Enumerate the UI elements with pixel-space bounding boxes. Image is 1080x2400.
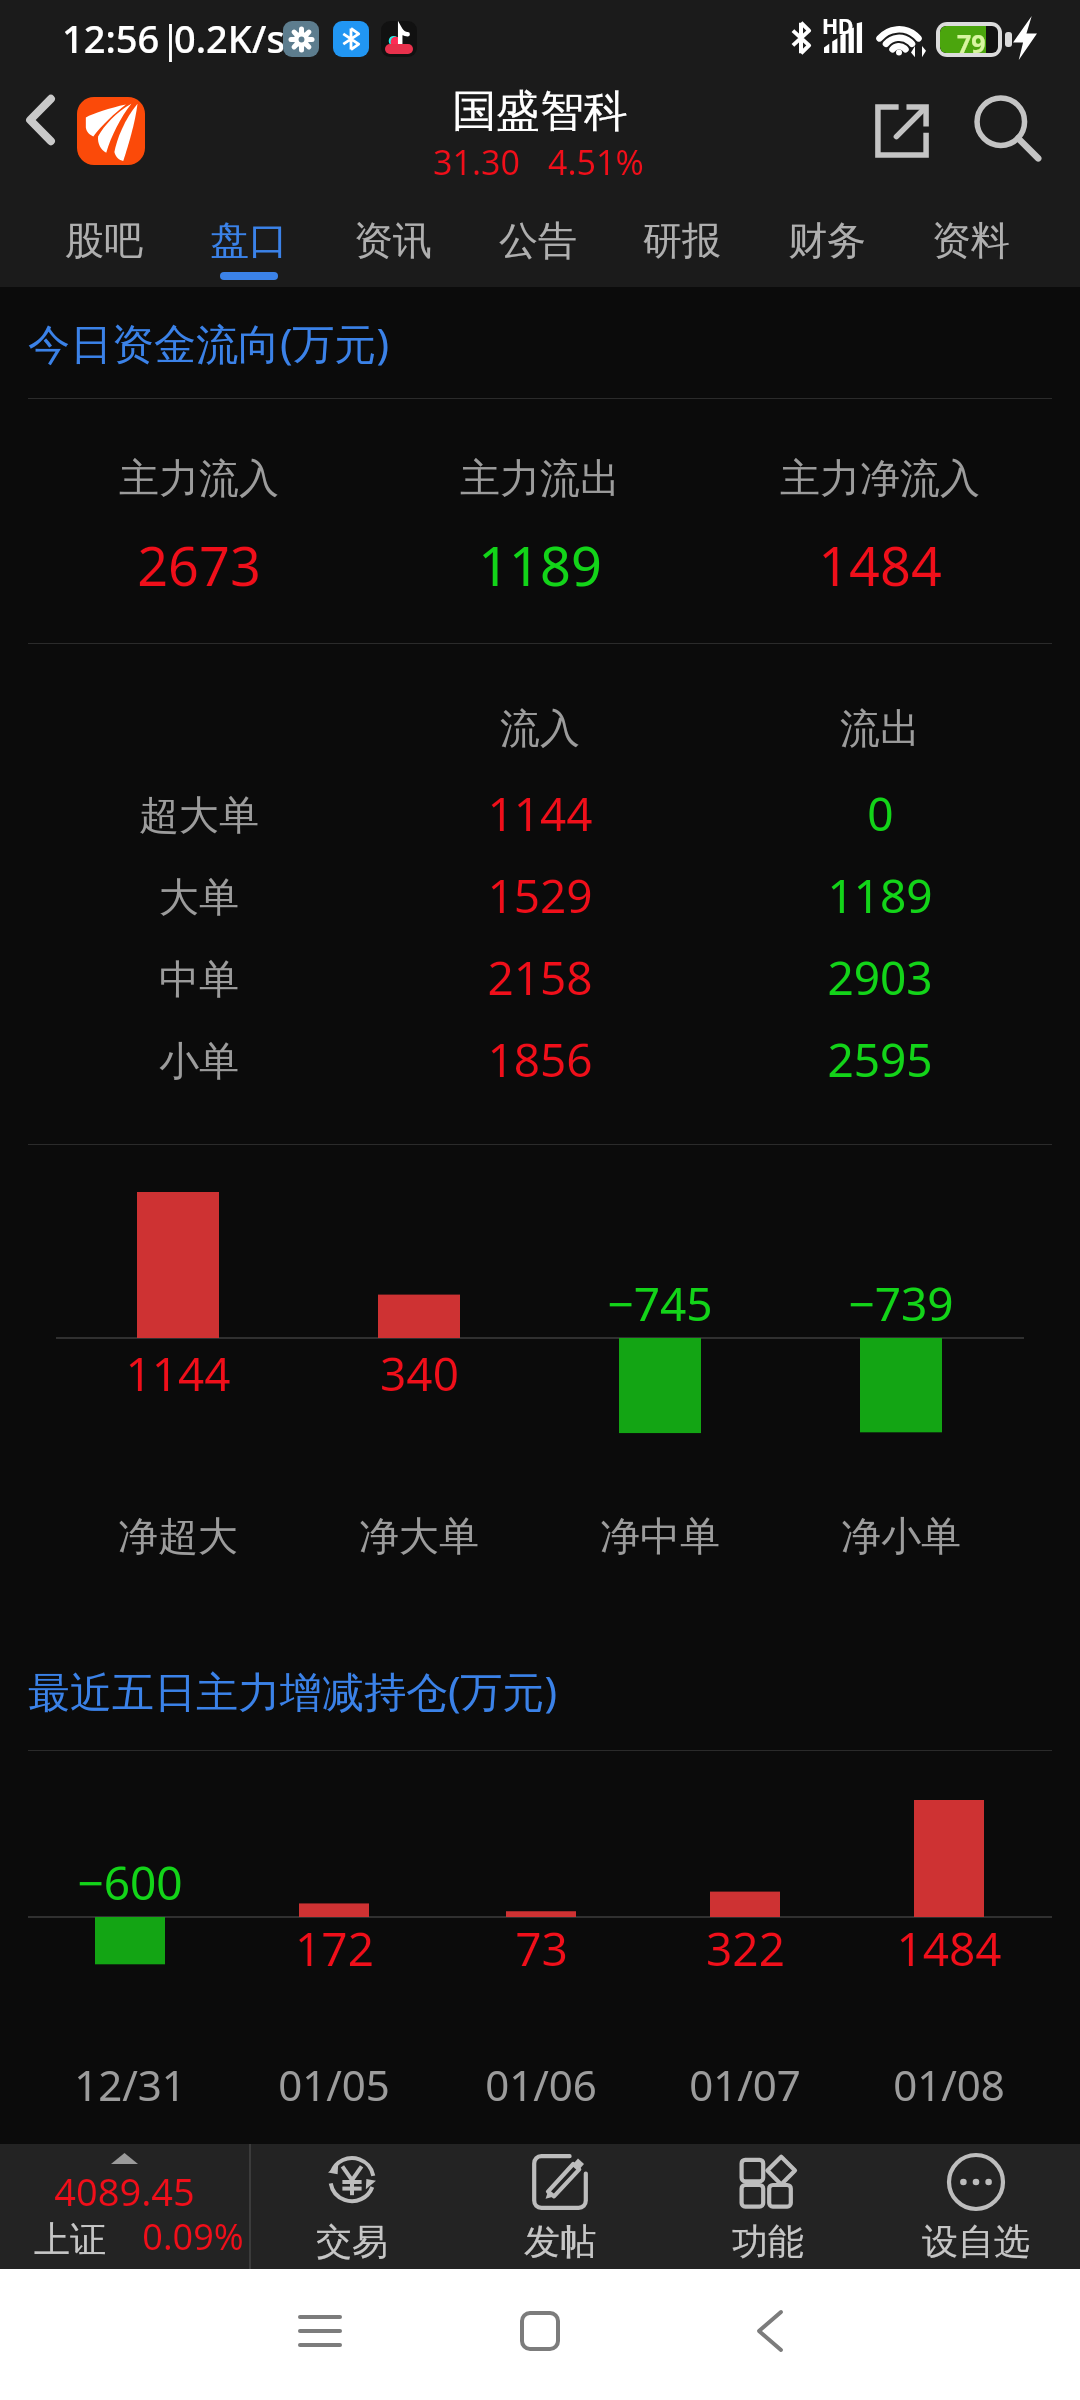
button[interactable] bbox=[755, 192, 899, 287]
staticText: 2595 bbox=[827, 1028, 933, 1091]
staticText: −600 bbox=[77, 1851, 183, 1914]
button[interactable] bbox=[664, 2144, 872, 2269]
staticText: 12/31 bbox=[74, 2056, 186, 2113]
staticText: 73 bbox=[515, 1917, 568, 1980]
staticText: 发帖 bbox=[524, 2219, 596, 2264]
staticText: 上证 bbox=[34, 2217, 106, 2262]
button[interactable] bbox=[0, 2144, 249, 2269]
staticText: 净中单 bbox=[600, 1511, 720, 1561]
staticText: 流入 bbox=[500, 703, 580, 753]
staticText: 1529 bbox=[487, 864, 593, 927]
staticText: 中单 bbox=[159, 954, 239, 1004]
staticText: 1856 bbox=[487, 1028, 593, 1091]
staticText: 31.30 bbox=[433, 139, 520, 185]
staticText: 1484 bbox=[896, 1917, 1002, 1980]
button[interactable]: Home bbox=[510, 2301, 570, 2361]
staticText: 2673 bbox=[137, 528, 261, 602]
staticText: 财务 bbox=[788, 216, 866, 265]
staticText: 1189 bbox=[478, 528, 602, 602]
staticText: 研报 bbox=[643, 216, 721, 265]
button[interactable] bbox=[456, 2144, 664, 2269]
staticText: 大单 bbox=[159, 872, 239, 922]
button[interactable] bbox=[899, 192, 1043, 287]
staticText: 主力净流入 bbox=[780, 453, 980, 503]
staticText: 资料 bbox=[932, 216, 1010, 265]
staticText: 净小单 bbox=[841, 1511, 961, 1561]
staticText: 2903 bbox=[827, 946, 933, 1009]
staticText: 1144 bbox=[487, 782, 593, 845]
staticText: 交易 bbox=[316, 2219, 388, 2264]
staticText: 功能 bbox=[732, 2219, 804, 2264]
staticText: 超大单 bbox=[139, 790, 259, 840]
staticText: 2158 bbox=[487, 946, 593, 1009]
staticText: 主力流出 bbox=[460, 453, 620, 503]
staticText: −745 bbox=[607, 1272, 713, 1335]
staticText: 公告 bbox=[499, 216, 577, 265]
staticText: 股吧 bbox=[65, 216, 143, 265]
button[interactable]: Back bbox=[6, 86, 74, 154]
staticText: 1189 bbox=[827, 864, 933, 927]
staticText: 340 bbox=[380, 1342, 459, 1405]
staticText: 01/05 bbox=[278, 2056, 390, 2113]
button[interactable]: Recent apps bbox=[290, 2301, 350, 2361]
staticText: 盘口 bbox=[210, 216, 288, 265]
staticText: 0 bbox=[867, 782, 894, 845]
button[interactable]: Search bbox=[960, 88, 1056, 174]
staticText: 最近五日主力增减持仓(万元) bbox=[28, 1662, 558, 1719]
staticText: 01/06 bbox=[485, 2056, 597, 2113]
button[interactable] bbox=[466, 192, 610, 287]
staticText: 流出 bbox=[840, 703, 920, 753]
staticText: | bbox=[160, 12, 181, 64]
staticText: 79 bbox=[957, 26, 986, 53]
button[interactable]: Share bbox=[860, 88, 944, 174]
staticText: 01/08 bbox=[893, 2056, 1005, 2113]
staticText: 1484 bbox=[818, 528, 942, 602]
staticText: 小单 bbox=[159, 1036, 239, 1086]
staticText: HD bbox=[822, 12, 854, 41]
staticText: 净超大 bbox=[118, 1511, 238, 1561]
staticText: 0.2K/s bbox=[174, 12, 285, 64]
staticText: 172 bbox=[295, 1917, 374, 1980]
staticText: 12:56 bbox=[62, 12, 160, 64]
staticText: −739 bbox=[848, 1272, 954, 1335]
staticText: 4089.45 bbox=[54, 2165, 195, 2217]
staticText: 322 bbox=[706, 1917, 785, 1980]
staticText: 设自选 bbox=[922, 2219, 1030, 2264]
staticText: 0.09% bbox=[142, 2212, 244, 2261]
button[interactable] bbox=[610, 192, 754, 287]
staticText: 国盛智科 bbox=[452, 84, 628, 139]
staticText: 资讯 bbox=[354, 216, 432, 265]
staticText: 01/07 bbox=[689, 2056, 801, 2113]
staticText: 1144 bbox=[125, 1342, 231, 1405]
button[interactable] bbox=[32, 192, 176, 287]
staticText: 净大单 bbox=[359, 1511, 479, 1561]
button[interactable] bbox=[321, 192, 465, 287]
staticText: 主力流入 bbox=[119, 453, 279, 503]
button[interactable]: Back bbox=[740, 2301, 800, 2361]
button[interactable] bbox=[872, 2144, 1080, 2269]
staticText: 4.51% bbox=[548, 139, 644, 185]
button[interactable]: Eastmoney home bbox=[77, 97, 145, 165]
button[interactable] bbox=[177, 192, 321, 287]
button[interactable] bbox=[248, 2144, 456, 2269]
staticText: 今日资金流向(万元) bbox=[28, 314, 390, 371]
